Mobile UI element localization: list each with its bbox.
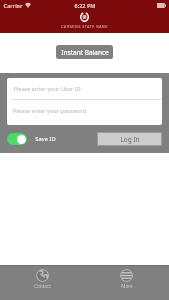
staticText: CARMINE STATE BANK [61, 24, 108, 29]
staticText: 6:22 PM [74, 2, 96, 9]
button[interactable]: Instant Balance [56, 45, 113, 59]
other: Contact [36, 269, 49, 282]
button[interactable]: More [84, 265, 169, 300]
button[interactable]: Log In [97, 132, 162, 146]
staticText: Carrier [3, 2, 23, 9]
button[interactable]: Contact [0, 265, 84, 300]
staticText: Instant Balance [61, 48, 109, 57]
staticText: Please enter your User ID [13, 85, 81, 93]
staticText: More [121, 283, 133, 289]
staticText: Contact [34, 283, 51, 289]
staticText: Save ID [35, 135, 56, 143]
staticText: Log In [120, 135, 140, 144]
button[interactable]: Save ID toggle [7, 133, 27, 145]
other: More [120, 269, 133, 282]
staticText: Please enter your password [13, 107, 86, 115]
